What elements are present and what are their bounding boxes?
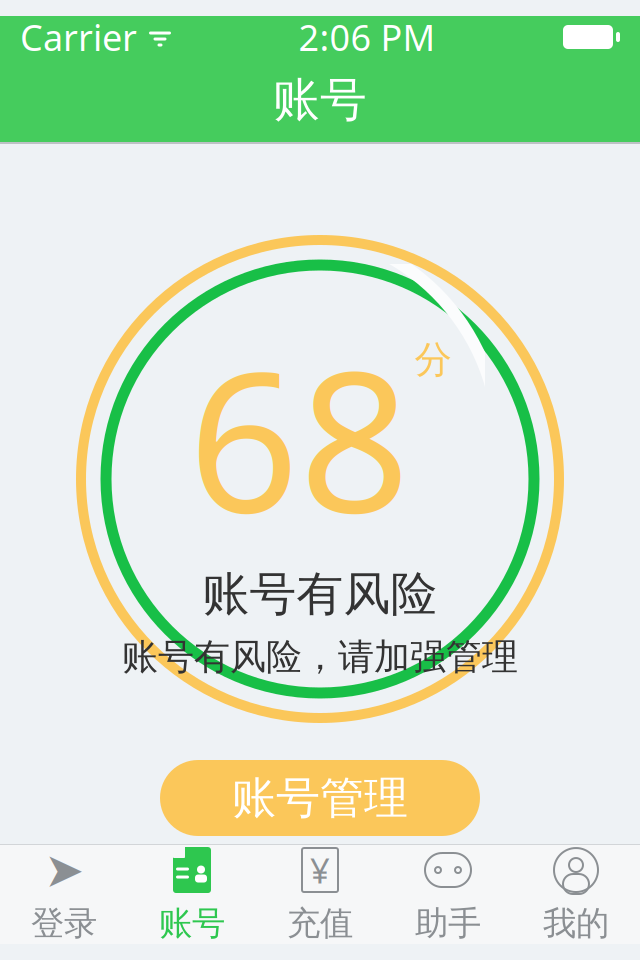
staticText: ¥ (310, 847, 330, 893)
staticText: 2:06 PM (298, 13, 435, 61)
staticText: 助手 (415, 903, 481, 944)
staticText: 账号管理 (232, 771, 408, 825)
button[interactable]: ¥ (256, 845, 384, 944)
staticText: 登录 (31, 903, 97, 944)
staticText: 充值 (287, 903, 353, 944)
staticText: 账号 (159, 903, 225, 944)
button[interactable]: ➤ (0, 845, 128, 944)
button[interactable]: 账号管理 (160, 760, 480, 836)
staticText: 账号有风险，请加强管理 (122, 635, 518, 679)
staticText: 账号有风险 (202, 566, 437, 623)
staticText: 68 (188, 309, 410, 566)
staticText: ➤ (44, 843, 84, 897)
button[interactable]: 助手 (384, 845, 512, 944)
button[interactable]: 账号 (128, 845, 256, 944)
staticText: Carrier (20, 13, 137, 61)
button[interactable]: 我的 (512, 845, 640, 944)
staticText: 分 (414, 337, 451, 383)
staticText: 我的 (543, 903, 609, 944)
staticText: 账号 (273, 71, 367, 129)
